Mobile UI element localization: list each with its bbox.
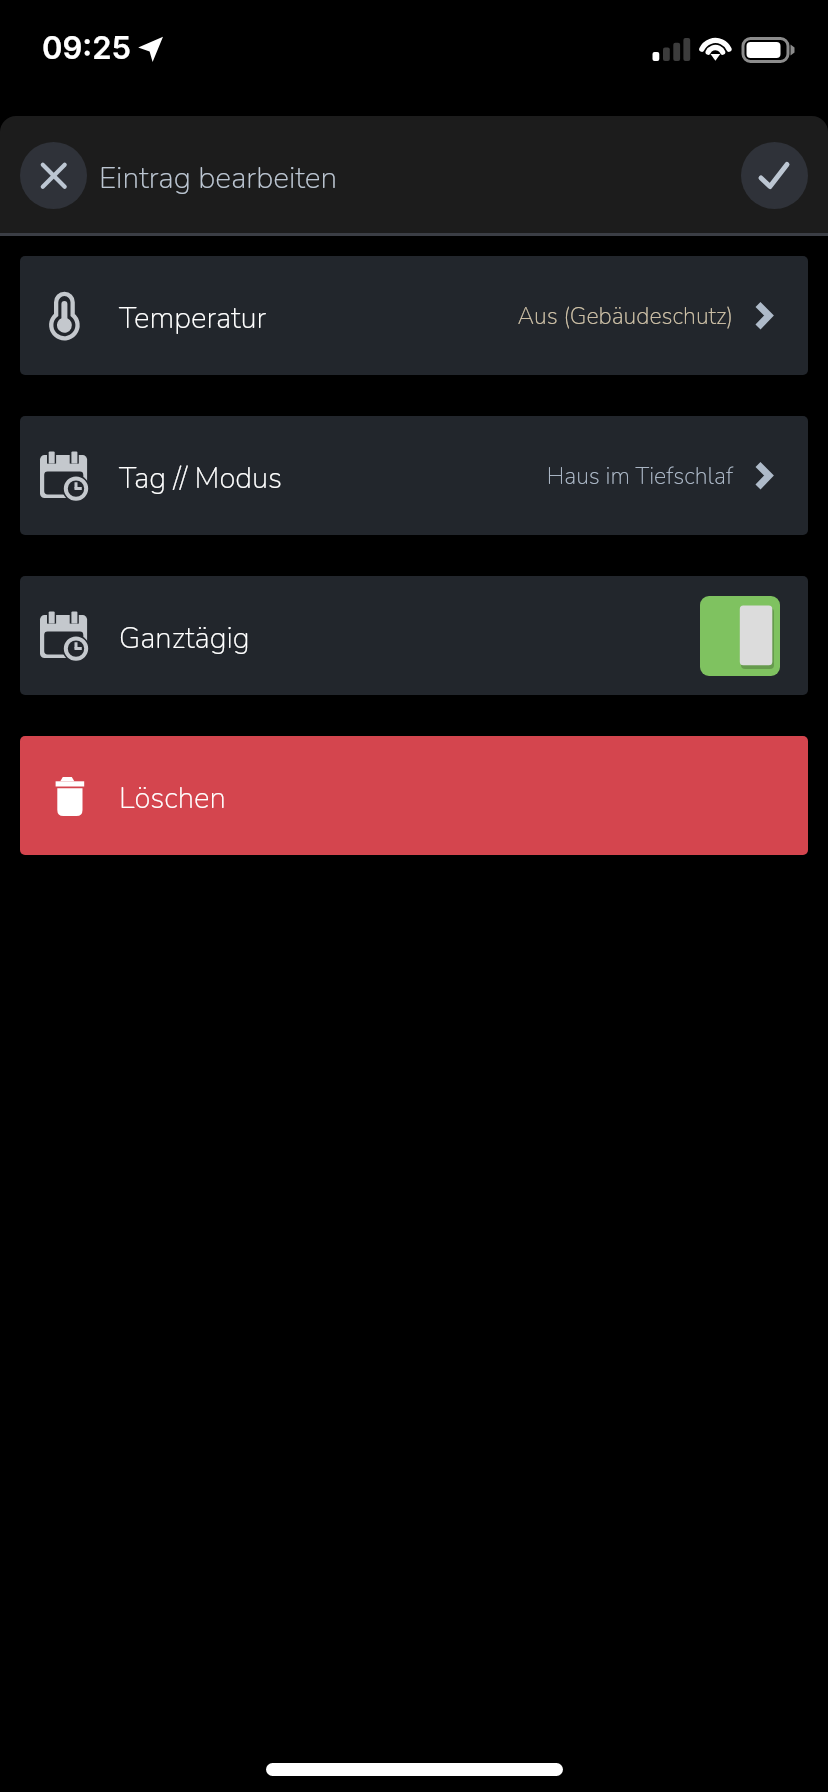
button[interactable]: Temperatur [20,256,808,375]
staticText: Eintrag bearbeiten [99,158,337,199]
button[interactable]: Tag // Modus [20,416,808,535]
staticText: Haus im Tiefschlaf [333,461,733,493]
button[interactable]: Speichern [741,142,808,209]
button[interactable]: Löschen [20,736,808,855]
staticText: Löschen [119,778,226,818]
button[interactable]: Ganztägig [20,576,808,695]
button[interactable]: Abbrechen [20,142,87,209]
staticText: 09:25 [42,29,131,67]
staticText: Tag // Modus [119,458,283,498]
button[interactable]: Ganztägig [700,596,780,676]
staticText: Temperatur [119,298,267,338]
staticText: Aus (Gebäudeschutz) [333,301,733,333]
staticText: Ganztägig [119,618,250,658]
